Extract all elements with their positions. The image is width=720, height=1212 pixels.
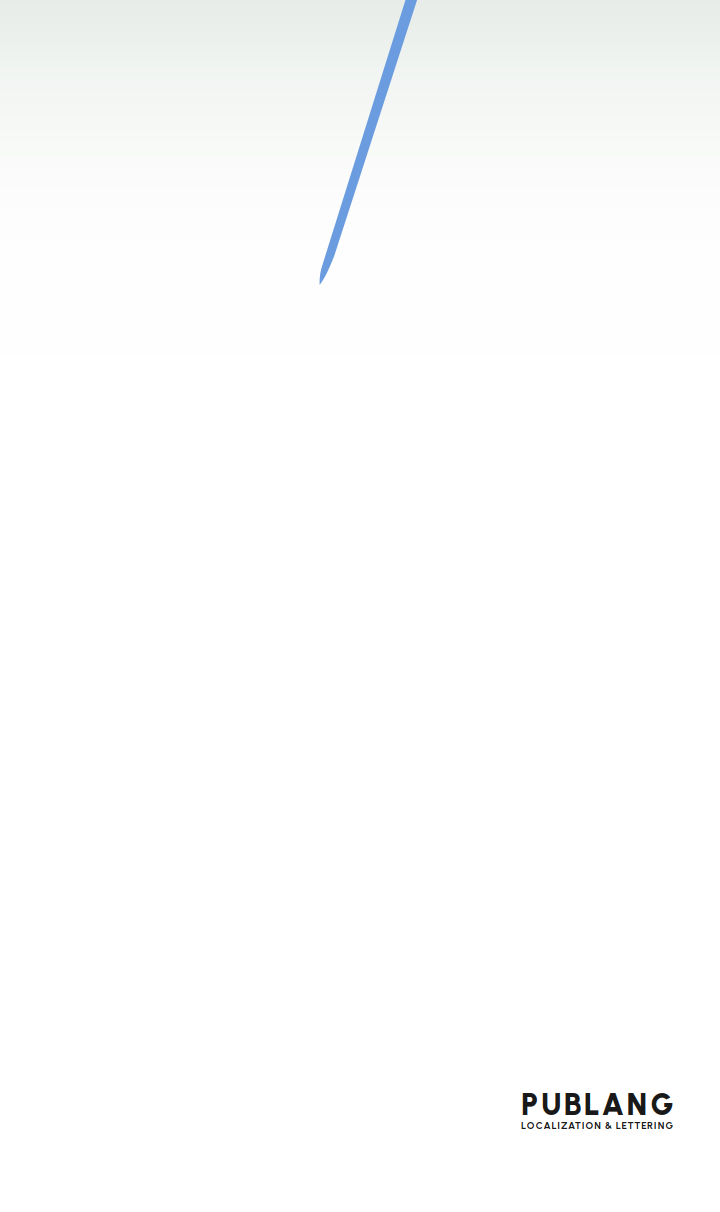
staticText: LOCALIZATION & LETTERING bbox=[521, 1120, 676, 1131]
staticText: PUBLANG bbox=[521, 1086, 683, 1122]
